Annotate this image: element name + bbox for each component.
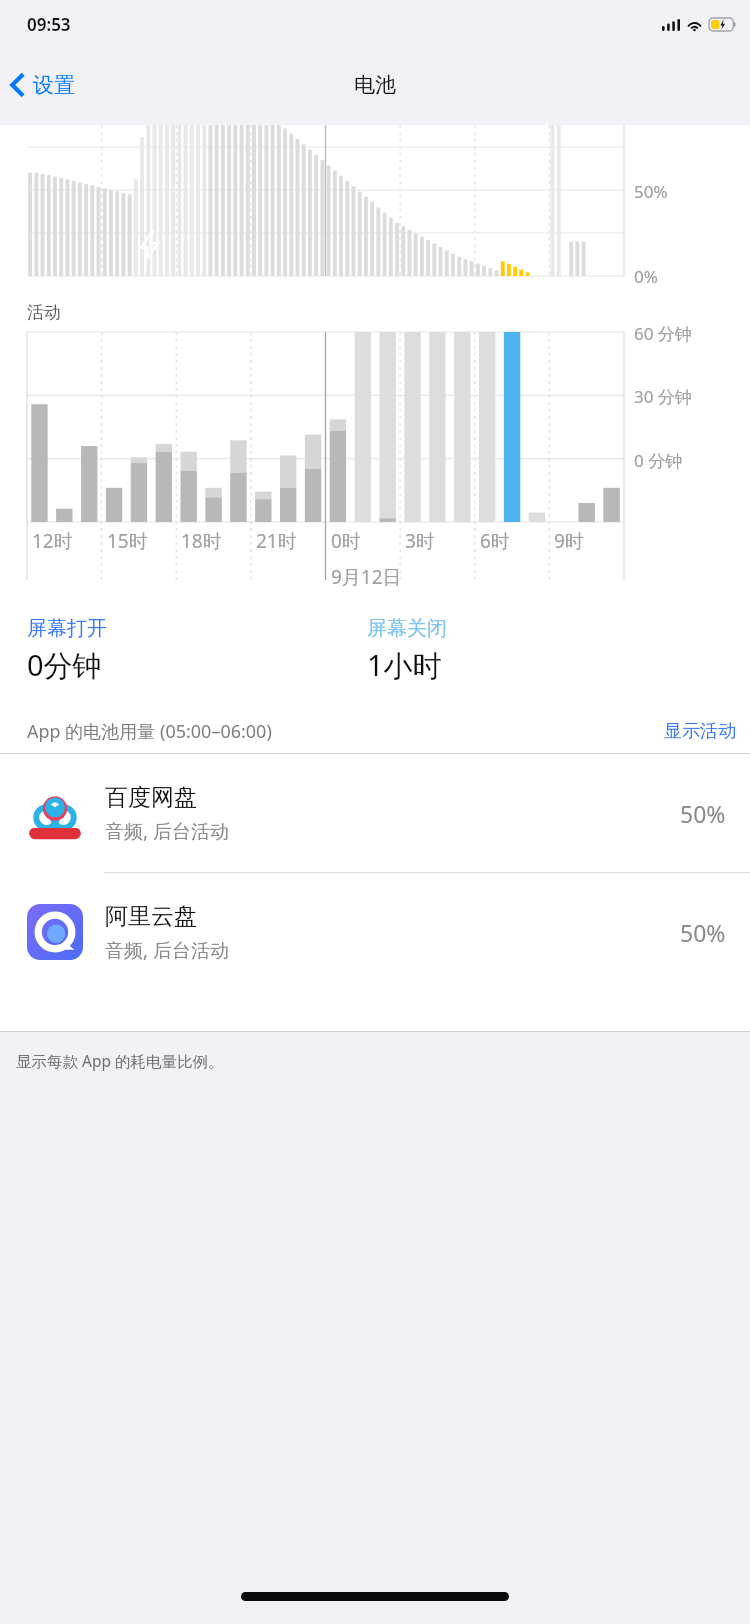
other: 阿里云盘 (27, 904, 83, 960)
staticText: 50% (680, 798, 726, 829)
staticText: 6时 (480, 528, 510, 554)
staticText: 18时 (181, 528, 222, 554)
button[interactable]: 百度网盘 (0, 754, 750, 872)
staticText: App 的电池用量 (05:00–06:00) (27, 719, 272, 744)
staticText: 15时 (107, 528, 148, 554)
staticText: 百度网盘 (105, 783, 197, 812)
staticText: 显示活动 (664, 720, 736, 743)
staticText: 09:53 (27, 13, 71, 36)
staticText: 50% (634, 180, 668, 203)
staticText: 30 分钟 (634, 385, 692, 408)
button[interactable]: 显示活动 (650, 714, 750, 749)
staticText: 音频, 后台活动 (105, 937, 230, 963)
staticText: 9时 (554, 528, 584, 554)
staticText: 屏幕关闭 (367, 616, 447, 641)
staticText: 0时 (331, 528, 361, 554)
staticText: 50% (680, 917, 726, 948)
staticText: 3时 (405, 528, 435, 554)
staticText: 1小时 (367, 645, 442, 685)
staticText: 0分钟 (27, 645, 102, 685)
staticText: 阿里云盘 (105, 902, 197, 931)
staticText: 音频, 后台活动 (105, 818, 230, 844)
staticText: 电池 (354, 72, 396, 98)
staticText: 活动 (27, 302, 61, 323)
staticText: 60 分钟 (634, 322, 692, 345)
staticText: 设置 (33, 72, 75, 98)
staticText: 9月12日 (331, 564, 402, 590)
staticText: 21时 (256, 528, 297, 554)
button[interactable]: 阿里云盘 (0, 873, 750, 991)
staticText: 0% (634, 265, 658, 288)
staticText: 显示每款 App 的耗电量比例。 (16, 1050, 224, 1071)
staticText: 12时 (32, 528, 73, 554)
staticText: 0 分钟 (634, 449, 683, 472)
other: 百度网盘 (27, 785, 83, 841)
staticText: 屏幕打开 (27, 616, 107, 641)
button[interactable]: 设置 (0, 63, 87, 107)
